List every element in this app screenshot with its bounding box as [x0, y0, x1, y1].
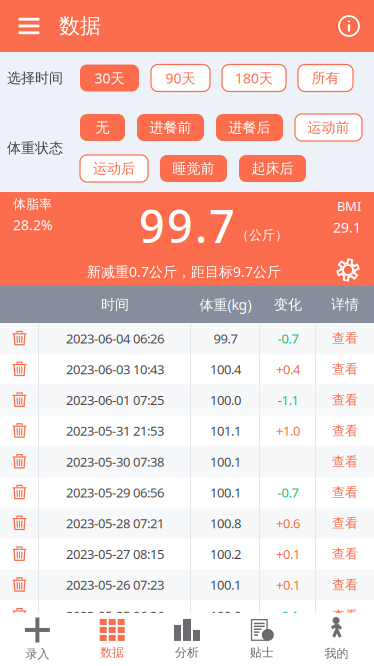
staticText: 100.8: [210, 514, 241, 532]
button[interactable]: 睡觉前: [160, 155, 227, 182]
staticText: -0.1: [277, 607, 298, 624]
staticText: 101.1: [210, 422, 241, 440]
button[interactable]: Delete: [0, 446, 39, 477]
staticText: BMI: [337, 197, 361, 215]
staticText: 体重(kg): [199, 295, 251, 314]
staticText: 100.1: [210, 483, 241, 501]
staticText: 100.0: [210, 607, 241, 624]
staticText: 分析: [175, 645, 199, 660]
staticText: 贴士: [250, 645, 274, 660]
button[interactable]: 查看: [316, 354, 374, 385]
staticText: 运动前: [307, 119, 349, 136]
staticText: 进餐后: [228, 119, 270, 136]
staticText: 我的: [325, 646, 349, 661]
button[interactable]: 贴士: [224, 613, 299, 666]
staticText: 30天: [94, 68, 124, 88]
staticText: 查看: [332, 361, 358, 377]
button[interactable]: 运动后: [80, 155, 148, 182]
staticText: 选择时间: [7, 69, 63, 87]
button[interactable]: 查看: [316, 508, 374, 539]
staticText: 进餐前: [149, 119, 191, 136]
button[interactable]: Delete: [0, 569, 39, 600]
staticText: 查看: [332, 607, 358, 624]
staticText: 2023-06-01 07:25: [66, 391, 164, 409]
staticText: 所有: [311, 69, 339, 87]
button[interactable]: 查看: [316, 446, 374, 477]
staticText: 查看: [332, 392, 358, 408]
button[interactable]: Delete: [0, 477, 39, 508]
staticText: （公斤）: [236, 227, 288, 243]
staticText: 99.7: [213, 329, 237, 347]
staticText: 2023-05-30 07:38: [66, 453, 164, 470]
button[interactable]: 查看: [316, 323, 374, 354]
staticText: 查看: [332, 515, 358, 531]
staticText: 查看: [332, 484, 358, 501]
staticText: 180天: [235, 68, 273, 88]
staticText: +0.4: [276, 360, 300, 378]
staticText: 查看: [332, 546, 358, 562]
button[interactable]: 我的: [299, 613, 374, 666]
staticText: 详情: [331, 296, 359, 313]
staticText: 睡觉前: [172, 160, 214, 177]
staticText: 时间: [101, 296, 129, 313]
button[interactable]: Delete: [0, 539, 39, 569]
button[interactable]: Delete: [0, 385, 39, 415]
staticText: 29.1: [333, 218, 361, 237]
staticText: 2023-05-26 07:23: [66, 576, 164, 594]
button[interactable]: 查看: [316, 569, 374, 600]
button[interactable]: Delete: [0, 508, 39, 539]
button[interactable]: 分析: [150, 613, 224, 666]
staticText: 28.2%: [13, 215, 53, 234]
button[interactable]: 起床后: [239, 155, 306, 182]
staticText: 2023-05-27 08:15: [66, 545, 164, 563]
button[interactable]: 进餐前: [137, 114, 204, 141]
staticText: 运动后: [93, 160, 135, 177]
button[interactable]: 查看: [316, 477, 374, 508]
staticText: 2023-05-31 21:53: [66, 422, 164, 440]
button[interactable]: 数据: [75, 613, 150, 666]
button[interactable]: 查看: [316, 415, 374, 446]
staticText: 数据: [100, 645, 124, 660]
staticText: +1.0: [276, 422, 300, 440]
button[interactable]: 查看: [316, 539, 374, 569]
button[interactable]: 90天: [151, 64, 210, 91]
staticText: 2023-05-25 06:26: [66, 607, 164, 624]
button[interactable]: Settings: [336, 258, 360, 282]
staticText: 查看: [332, 453, 358, 470]
button[interactable]: 无: [80, 114, 125, 141]
staticText: -1.1: [277, 391, 298, 409]
staticText: 2023-05-28 07:21: [66, 514, 164, 532]
staticText: 体脂率: [13, 196, 52, 212]
button[interactable]: 运动前: [295, 114, 362, 141]
staticText: 100.4: [210, 360, 241, 378]
staticText: 99.7: [139, 195, 235, 256]
button[interactable]: Delete: [0, 415, 39, 446]
button[interactable]: 进餐后: [216, 114, 283, 141]
staticText: 100.2: [210, 545, 241, 563]
staticText: -0.7: [277, 483, 298, 501]
staticText: 100.1: [210, 576, 241, 594]
staticText: 90天: [165, 68, 195, 88]
staticText: 2023-06-04 06:26: [66, 329, 164, 347]
staticText: -0.7: [277, 329, 298, 347]
staticText: 查看: [332, 423, 358, 439]
button[interactable]: Delete: [0, 600, 39, 631]
button[interactable]: Delete: [0, 323, 39, 354]
staticText: 变化: [274, 296, 302, 313]
staticText: 体重状态: [7, 139, 63, 157]
button[interactable]: 180天: [222, 64, 286, 91]
staticText: 查看: [332, 330, 358, 347]
button[interactable]: 查看: [316, 600, 374, 631]
staticText: 无: [95, 119, 109, 136]
button[interactable]: 30天: [80, 64, 139, 91]
staticText: 2023-05-29 06:56: [66, 483, 164, 501]
staticText: 录入: [25, 646, 49, 661]
button[interactable]: 所有: [298, 64, 353, 91]
button[interactable]: 录入: [0, 613, 75, 666]
staticText: 100.1: [210, 453, 241, 470]
staticText: 2023-06-03 10:43: [66, 360, 164, 378]
button[interactable]: 查看: [316, 385, 374, 415]
button[interactable]: Delete: [0, 354, 39, 385]
button[interactable]: Menu: [9, 0, 49, 52]
button[interactable]: Info: [327, 0, 371, 52]
